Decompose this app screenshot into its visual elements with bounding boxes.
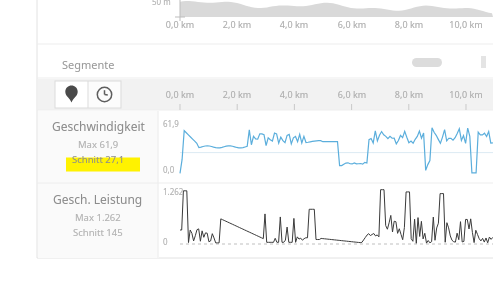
staticText: 2,0 km [215,18,259,30]
button[interactable]: Show segments on map [55,81,88,108]
staticText: Geschwindigkeit [52,118,145,134]
staticText: 10,0 km [444,18,488,30]
staticText: 1.262 [163,186,184,197]
button[interactable]: Segment filter [412,54,446,70]
staticText: 6,0 km [330,88,374,100]
button[interactable]: Geschwindigkeit [38,118,158,178]
staticText: Schnitt 27,1 [72,153,125,166]
staticText: 10,0 km [444,88,488,100]
staticText: 0,0 km [158,88,202,100]
staticText: Segmente [62,57,115,72]
staticText: Gesch. Leistung [53,191,143,207]
button[interactable]: Segmente [60,55,117,74]
staticText: 50 m [152,0,171,7]
staticText: 0,0 [163,164,175,175]
staticText: Max 1.262 [75,211,121,224]
staticText: 4,0 km [272,88,316,100]
button[interactable]: Show segments by time [88,81,121,108]
staticText: 8,0 km [387,18,431,30]
button[interactable]: Gesch. Leistung [38,191,158,251]
staticText: 6,0 km [330,18,374,30]
staticText: 0 [163,236,168,247]
staticText: 4,0 km [272,18,316,30]
staticText: Max 61,9 [78,138,119,151]
staticText: 8,0 km [387,88,431,100]
staticText: Schnitt 145 [73,226,123,239]
staticText: 2,0 km [215,88,259,100]
staticText: 61,9 [163,118,179,129]
staticText: 0,0 km [158,18,202,30]
